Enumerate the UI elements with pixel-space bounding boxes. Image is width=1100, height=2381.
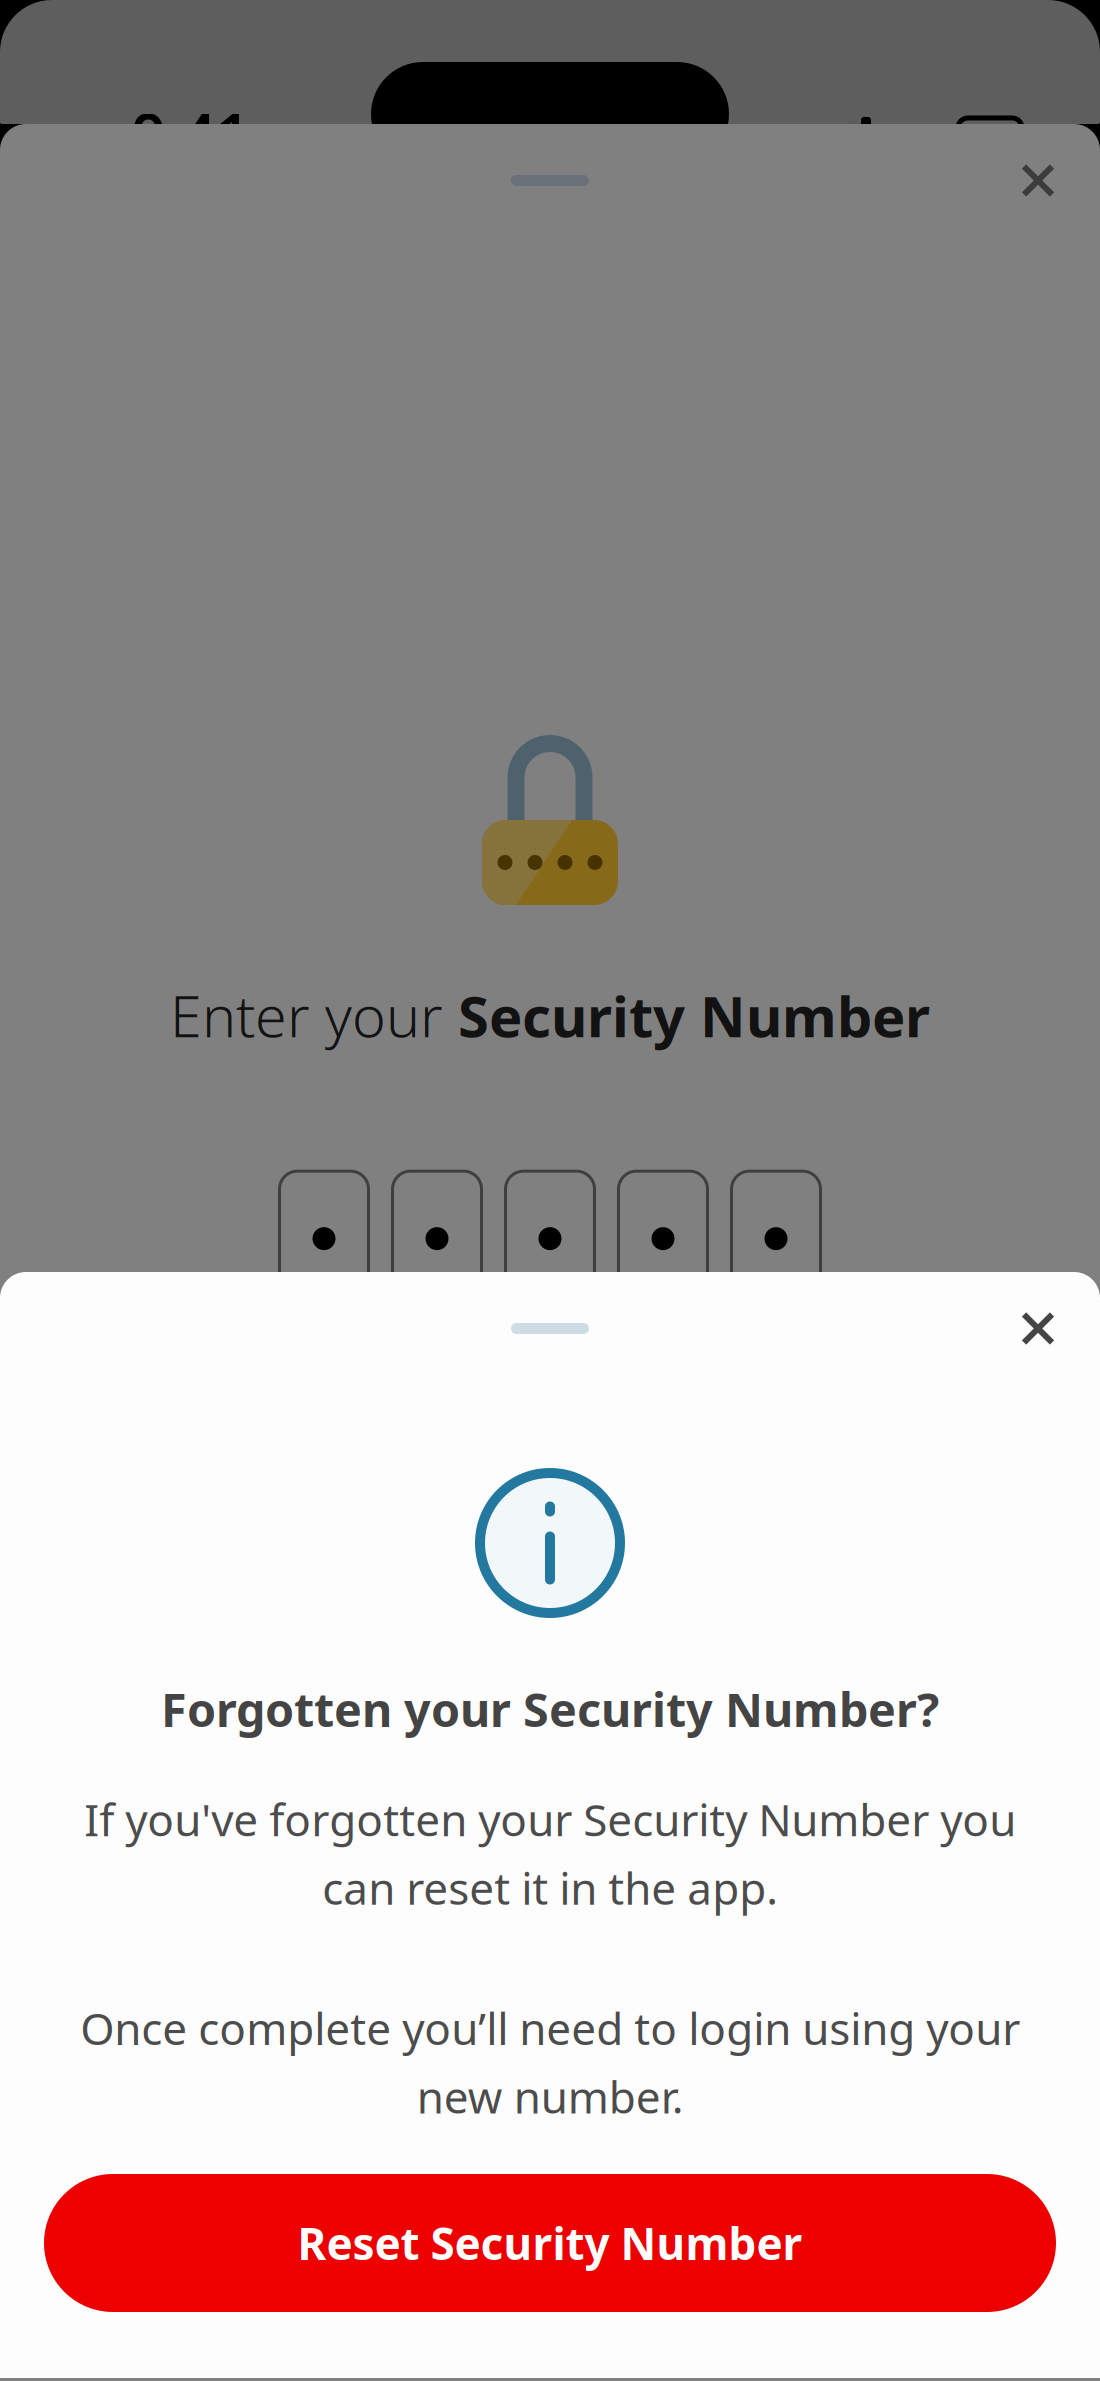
- button[interactable]: Reset Security Number: [44, 2174, 1056, 2312]
- button[interactable]: Close: [1007, 149, 1069, 211]
- staticText: If you've forgotten your Security Number…: [84, 1790, 1016, 1917]
- staticText: 9:41: [132, 95, 250, 173]
- staticText: Reset Security Number: [297, 2214, 802, 2272]
- button[interactable]: Security Number entry: [279, 1171, 820, 1296]
- staticText: Once complete you’ll need to login using…: [80, 1999, 1020, 2126]
- staticText: Enter your Security Number: [170, 977, 930, 1053]
- staticText: Forgotten your Security Number?: [161, 1678, 939, 1740]
- button[interactable]: Close: [1007, 1297, 1069, 1359]
